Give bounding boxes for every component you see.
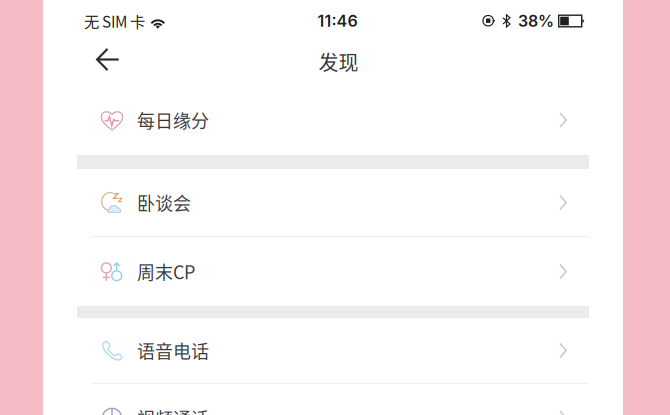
button[interactable]: 周末CP <box>77 237 589 306</box>
button[interactable]: Back <box>86 37 130 81</box>
staticText: 周末CP <box>137 258 195 285</box>
staticText: 每日缘分 <box>137 107 209 133</box>
staticText: 11:46 <box>317 11 357 31</box>
staticText: 38% <box>518 11 554 31</box>
staticText: 无 SIM 卡 <box>84 10 145 32</box>
staticText: 视频通话 <box>137 405 209 415</box>
button[interactable]: 卧谈会 <box>77 169 589 236</box>
staticText: 卧谈会 <box>137 189 191 216</box>
staticText: 发现 <box>318 47 358 76</box>
button[interactable]: 每日缘分 <box>77 85 589 155</box>
button[interactable]: 语音电话 <box>77 318 589 383</box>
button[interactable]: 视频通话 <box>77 384 589 415</box>
staticText: 语音电话 <box>137 337 209 364</box>
